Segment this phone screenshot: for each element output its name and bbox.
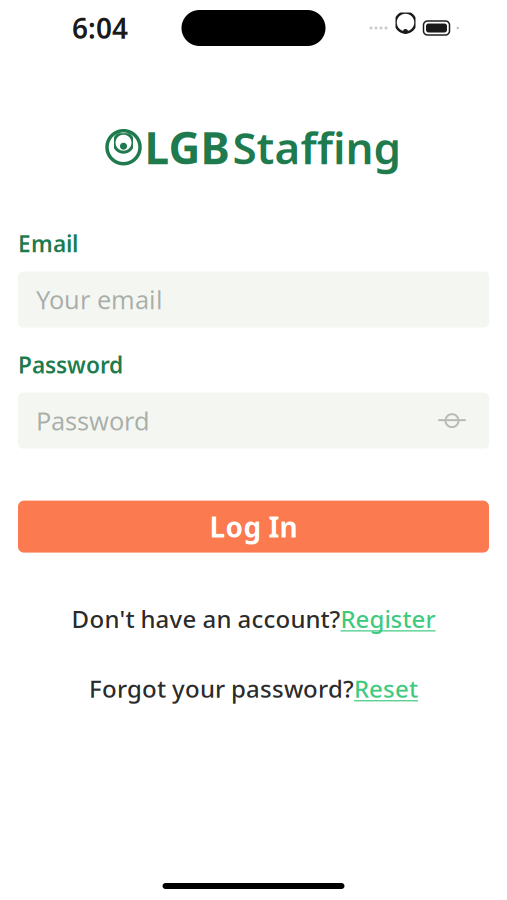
staticText: Your email (36, 283, 163, 316)
staticText: Register (340, 603, 435, 634)
staticText: Staffing (232, 118, 401, 176)
staticText: Reset (354, 672, 418, 704)
button[interactable]: Forgot your password? (18, 666, 489, 710)
staticText: Forgot your password? (89, 672, 354, 704)
staticText: Log In (209, 508, 297, 545)
button[interactable]: Show password (433, 405, 471, 437)
button[interactable]: Log In (18, 501, 489, 553)
staticText: Don't have an account? (71, 603, 340, 634)
staticText: Password (18, 349, 123, 380)
staticText: LGB (144, 118, 229, 176)
staticText: Password (36, 404, 150, 437)
staticText: 6:04 (72, 9, 128, 47)
button[interactable]: Don't have an account? (18, 597, 489, 640)
staticText: Email (18, 228, 78, 258)
